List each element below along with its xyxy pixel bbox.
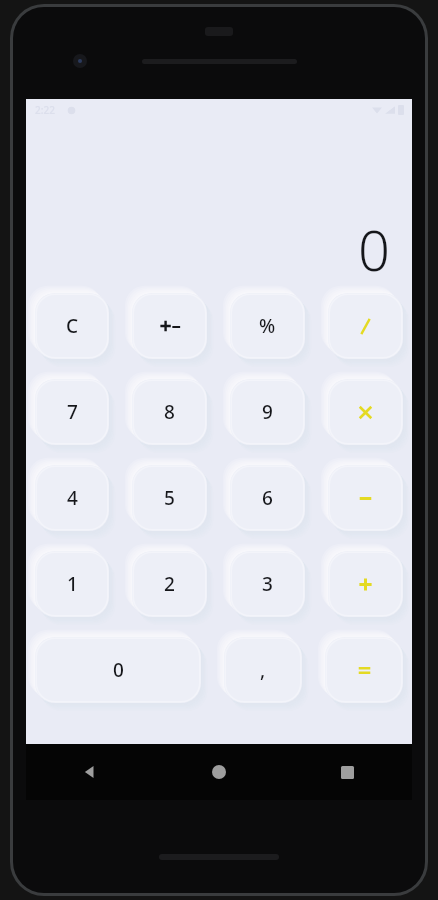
button[interactable]: % — [230, 293, 305, 359]
button[interactable]: Home — [154, 744, 283, 800]
staticText: 7 — [67, 399, 78, 425]
staticText: 2 — [164, 571, 175, 597]
staticText: 0 — [358, 211, 390, 287]
button[interactable] — [328, 551, 403, 617]
button[interactable]: 4 — [35, 465, 109, 531]
staticText: % — [259, 313, 276, 339]
button[interactable]: Back — [26, 744, 154, 800]
button[interactable]: Recent apps — [283, 744, 412, 800]
staticText: 2:22 — [35, 103, 55, 117]
staticText: 1 — [67, 571, 78, 597]
button[interactable]: 6 — [230, 465, 305, 531]
button[interactable] — [325, 637, 403, 703]
staticText: 4 — [67, 485, 78, 511]
button[interactable]: 0 — [35, 637, 201, 703]
button[interactable] — [328, 293, 403, 359]
button[interactable] — [132, 293, 207, 359]
button[interactable]: 7 — [35, 379, 109, 445]
staticText: , — [260, 657, 266, 683]
button[interactable]: 2 — [132, 551, 207, 617]
button[interactable] — [328, 465, 403, 531]
button[interactable]: 9 — [230, 379, 305, 445]
button[interactable] — [328, 379, 403, 445]
staticText: 8 — [164, 399, 175, 425]
button[interactable]: , — [224, 637, 302, 703]
button[interactable]: 8 — [132, 379, 207, 445]
button[interactable]: 5 — [132, 465, 207, 531]
staticText: 0 — [113, 657, 124, 683]
button[interactable]: 1 — [35, 551, 109, 617]
staticText: C — [66, 313, 79, 339]
button[interactable]: C — [35, 293, 109, 359]
staticText: 5 — [164, 485, 175, 511]
staticText: 6 — [262, 485, 273, 511]
staticText: 9 — [262, 399, 273, 425]
staticText: 3 — [262, 571, 273, 597]
button[interactable]: 3 — [230, 551, 305, 617]
